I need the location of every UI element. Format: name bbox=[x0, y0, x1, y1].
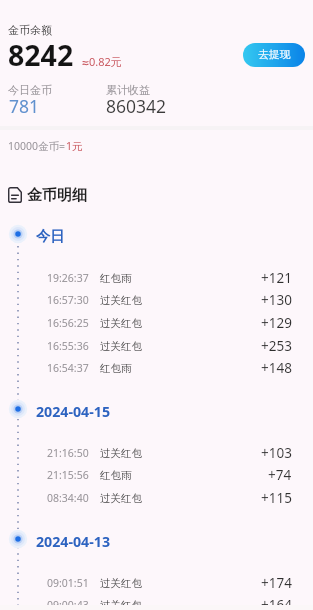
staticText: 10000金币= bbox=[8, 139, 66, 153]
button[interactable]: 09:01:51 bbox=[0, 573, 313, 593]
staticText: 今日 bbox=[36, 227, 65, 245]
staticText: +115 bbox=[261, 489, 292, 507]
staticText: 红包雨 bbox=[100, 272, 132, 285]
staticText: 2024-04-15 bbox=[36, 402, 111, 421]
button[interactable]: 09:00:43 bbox=[0, 595, 313, 610]
button[interactable]: 16:54:37 bbox=[0, 358, 313, 378]
staticText: 金币余额 bbox=[8, 23, 52, 37]
button[interactable]: 16:57:30 bbox=[0, 290, 313, 310]
staticText: 16:54:37 bbox=[47, 361, 89, 375]
staticText: 去提现 bbox=[258, 48, 291, 62]
button[interactable]: 21:15:56 bbox=[0, 465, 313, 485]
staticText: 红包雨 bbox=[100, 469, 132, 482]
staticText: 金币明细 bbox=[27, 186, 87, 205]
staticText: 19:26:37 bbox=[47, 271, 89, 285]
staticText: +174 bbox=[261, 574, 292, 592]
staticText: 21:16:50 bbox=[47, 446, 89, 460]
staticText: 0.82元 bbox=[89, 54, 122, 69]
button[interactable]: 16:56:25 bbox=[0, 313, 313, 333]
staticText: 860342 bbox=[106, 94, 167, 118]
button[interactable]: 16:55:36 bbox=[0, 336, 313, 356]
staticText: +253 bbox=[261, 337, 292, 355]
staticText: +103 bbox=[261, 444, 292, 462]
staticText: 过关红包 bbox=[100, 577, 142, 590]
staticText: 09:01:51 bbox=[47, 576, 89, 590]
staticText: 16:57:30 bbox=[47, 293, 89, 307]
staticText: 08:34:40 bbox=[47, 491, 89, 505]
staticText: 过关红包 bbox=[100, 599, 142, 610]
staticText: 21:15:56 bbox=[47, 468, 89, 482]
staticText: 09:00:43 bbox=[47, 598, 89, 610]
staticText: 过关红包 bbox=[100, 340, 142, 353]
staticText: +164 bbox=[261, 596, 292, 610]
staticText: 1元 bbox=[66, 139, 83, 153]
staticText: 16:55:36 bbox=[47, 339, 89, 353]
button[interactable]: 19:26:37 bbox=[0, 268, 313, 288]
button[interactable]: 21:16:50 bbox=[0, 443, 313, 463]
staticText: 16:56:25 bbox=[47, 316, 89, 330]
staticText: 2024-04-13 bbox=[36, 532, 111, 551]
staticText: 781 bbox=[9, 94, 40, 118]
staticText: 过关红包 bbox=[100, 294, 142, 307]
staticText: +74 bbox=[268, 466, 292, 484]
staticText: 累计收益 bbox=[106, 83, 150, 97]
button[interactable]: 去提现 bbox=[243, 43, 305, 67]
staticText: 今日金币 bbox=[8, 83, 52, 97]
staticText: +130 bbox=[261, 291, 292, 309]
staticText: 8242 bbox=[8, 36, 74, 75]
staticText: +121 bbox=[261, 269, 292, 287]
button[interactable]: 08:34:40 bbox=[0, 488, 313, 508]
staticText: 过关红包 bbox=[100, 492, 142, 505]
staticText: 过关红包 bbox=[100, 447, 142, 460]
staticText: +148 bbox=[261, 359, 292, 377]
staticText: +129 bbox=[261, 314, 292, 332]
staticText: 红包雨 bbox=[100, 362, 132, 375]
staticText: 过关红包 bbox=[100, 317, 142, 330]
